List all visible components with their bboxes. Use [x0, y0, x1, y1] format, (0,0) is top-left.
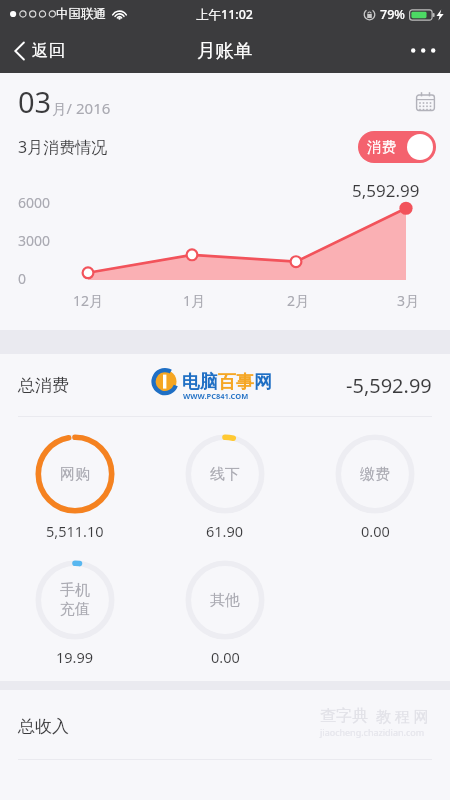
staticText: 79% — [380, 6, 405, 23]
staticText: 3月 — [397, 291, 420, 310]
staticText: 返回 — [32, 40, 65, 61]
staticText: 12月 — [73, 291, 104, 310]
button[interactable]: 消费 — [358, 131, 436, 163]
staticText: 月/ — [52, 98, 76, 118]
button[interactable]: 线下 — [150, 431, 300, 543]
staticText: 线下 — [210, 465, 240, 484]
staticText: 月账单 — [197, 39, 253, 62]
staticText: 总收入 — [18, 716, 69, 737]
button[interactable]: 网购 — [0, 431, 150, 543]
staticText: 3月消费情况 — [18, 136, 108, 158]
button[interactable]: 手机 — [0, 557, 150, 669]
staticText: jiaocheng.chazidian.com — [320, 726, 425, 738]
staticText: 5,592.99 — [352, 179, 420, 202]
staticText: 6000 — [18, 193, 51, 212]
button[interactable]: Select month — [401, 81, 450, 122]
staticText: 03 — [18, 82, 52, 121]
staticText: 查字典 — [320, 706, 368, 726]
button[interactable]: 其他 — [150, 557, 300, 669]
staticText: 2016 — [76, 98, 111, 118]
staticText: 消费 — [367, 138, 396, 156]
staticText: 0 — [18, 269, 27, 288]
staticText: 充值 — [60, 600, 90, 619]
staticText: 电脑 — [182, 371, 218, 394]
staticText: 网 — [254, 371, 272, 394]
staticText: 缴费 — [360, 465, 390, 484]
staticText: WWW.PC841.COM — [183, 391, 249, 401]
staticText: 19.99 — [56, 647, 94, 667]
button[interactable]: More options — [397, 34, 450, 67]
button[interactable]: 缴费 — [300, 431, 450, 543]
button[interactable]: 返回 — [0, 32, 79, 69]
staticText: 3000 — [18, 231, 51, 250]
staticText: 61.90 — [206, 521, 244, 541]
staticText: 2月 — [287, 291, 310, 310]
staticText: 手机 — [60, 581, 90, 600]
staticText: 其他 — [210, 591, 240, 610]
staticText: -5,592.99 — [346, 372, 432, 399]
staticText: 上午11:02 — [196, 6, 254, 23]
staticText: 百事 — [218, 371, 254, 394]
staticText: 1月 — [183, 291, 206, 310]
staticText: 网购 — [60, 465, 90, 484]
staticText: 0.00 — [361, 521, 390, 541]
staticText: 0.00 — [211, 647, 240, 667]
staticText: 总消费 — [18, 375, 69, 396]
staticText: 5,511.10 — [46, 521, 104, 541]
staticText: 中国联通 — [56, 6, 106, 22]
staticText: 教 程 网 — [376, 706, 429, 726]
